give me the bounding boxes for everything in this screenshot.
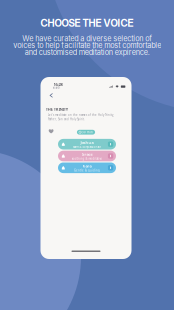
staticText: Let's meditate on the names of the Holy …	[48, 113, 114, 121]
staticText: THE TRINITY	[46, 106, 68, 112]
staticText: 30 min	[82, 130, 93, 134]
staticText: Joshua	[80, 140, 93, 145]
staticText: We have curated a diverse selection of v…	[13, 34, 161, 57]
staticText: Soothing & meditative	[71, 157, 102, 160]
button[interactable]: Grace	[58, 151, 116, 161]
staticText: Warm & compassionate	[72, 145, 101, 149]
staticText: Grace	[81, 152, 92, 157]
button[interactable]: Favourite	[47, 127, 55, 135]
staticText: CHOOSE THE VOICE	[40, 17, 133, 29]
button[interactable]: Joshua	[58, 139, 116, 149]
staticText: Gentle & guiding	[74, 169, 100, 172]
staticText: 16:28	[53, 82, 62, 87]
button[interactable]: Kara	[58, 162, 116, 173]
button[interactable]: Back	[47, 91, 55, 99]
staticText: Search	[52, 86, 60, 89]
staticText: Kara	[82, 163, 91, 169]
